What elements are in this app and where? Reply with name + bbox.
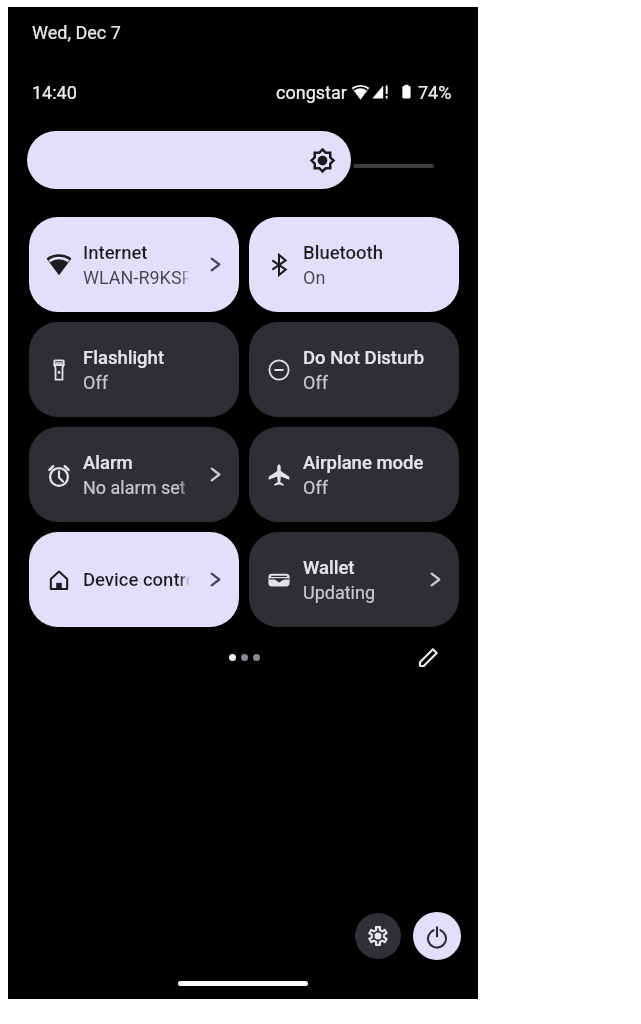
button[interactable]: Brightness <box>27 131 351 189</box>
staticText: Wallet <box>303 557 355 579</box>
button[interactable]: Bluetooth <box>249 217 459 312</box>
staticText: Internet <box>83 242 148 264</box>
button[interactable]: Flashlight <box>29 322 239 417</box>
staticText: Off <box>303 372 328 393</box>
staticText: Updating <box>303 582 376 603</box>
staticText: congstar <box>276 82 347 103</box>
button[interactable]: Wallet <box>249 532 459 627</box>
staticText: Wed, Dec 7 <box>32 22 121 43</box>
staticText: Bluetooth <box>303 242 383 264</box>
button[interactable]: Edit tiles <box>411 639 447 675</box>
button[interactable]: Device controls <box>29 532 239 627</box>
staticText: Do Not Disturb <box>303 347 425 369</box>
button[interactable]: Alarm <box>29 427 239 522</box>
button[interactable]: Do Not Disturb <box>249 322 459 417</box>
staticText: On <box>303 267 326 288</box>
staticText: Alarm <box>83 452 133 474</box>
staticText: No alarm set <box>83 477 186 498</box>
staticText: 74% <box>418 82 452 103</box>
staticText: 14:40 <box>32 82 77 103</box>
staticText: WLAN-R9KSP <box>83 267 190 288</box>
staticText: Flashlight <box>83 347 165 369</box>
button[interactable]: Internet <box>29 217 239 312</box>
staticText: Off <box>303 477 328 498</box>
staticText: Airplane mode <box>303 452 424 474</box>
button[interactable]: Settings <box>355 913 401 959</box>
staticText: Device controls <box>83 569 190 591</box>
button[interactable]: Power <box>413 912 461 960</box>
staticText: Off <box>83 372 108 393</box>
button[interactable]: Airplane mode <box>249 427 459 522</box>
